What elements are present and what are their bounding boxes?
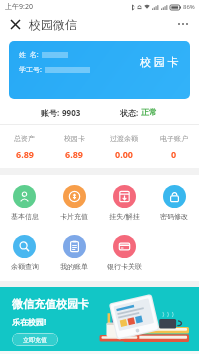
staticText: 微信充值校园卡 (12, 297, 89, 311)
button[interactable]: 基本信息 (0, 183, 49, 223)
staticText: 挂失/解挂 (109, 212, 140, 222)
button[interactable]: 过渡余额 (99, 134, 149, 160)
button[interactable]: 电子账户 (149, 134, 199, 160)
staticText: 校 园 卡 (140, 54, 179, 69)
staticText: 账号: (41, 107, 62, 118)
button[interactable]: 更多 (174, 15, 192, 33)
staticText: 密码修改 (160, 212, 188, 221)
staticText: 基本信息 (11, 212, 39, 221)
staticText: 乐在校园! (12, 316, 47, 327)
staticText: 过渡余额 (110, 134, 138, 143)
button[interactable]: 卡片充值 (49, 183, 99, 223)
staticText: 卡片充值 (60, 212, 88, 221)
button[interactable]: 密码修改 (149, 183, 199, 223)
button[interactable]: 挂失/解挂 (99, 183, 149, 224)
button[interactable]: 银行卡关联 (99, 233, 149, 273)
staticText: 总资产 (14, 134, 35, 143)
staticText: 电子账户 (160, 134, 188, 143)
button[interactable]: 校园卡 (49, 134, 99, 160)
staticText: 0 (171, 148, 177, 160)
button[interactable]: 微信充值校园卡 (0, 287, 199, 351)
staticText: 上午9:20 (5, 2, 33, 12)
staticText: 6.89 (16, 148, 34, 160)
staticText: 银行卡关联 (107, 262, 142, 271)
staticText: 6.89 (65, 148, 83, 160)
staticText: 校园微信 (29, 17, 77, 32)
staticText: 状态: (120, 107, 141, 118)
button[interactable]: 姓 名: (9, 41, 190, 99)
staticText: 正常 (141, 107, 157, 117)
staticText: 9903 (62, 107, 81, 118)
button[interactable]: 余额查询 (0, 233, 49, 273)
staticText: 余额查询 (11, 262, 39, 271)
staticText: 校园卡 (64, 134, 85, 143)
staticText: 学工号: (19, 65, 42, 75)
staticText: 我的账单 (60, 262, 88, 271)
staticText: 立即充值 (23, 336, 47, 344)
button[interactable]: 总资产 (0, 134, 49, 160)
button[interactable]: 关闭 (7, 16, 23, 32)
button[interactable]: 我的账单 (49, 233, 99, 273)
staticText: 0.00 (115, 148, 133, 160)
staticText: 姓 名: (19, 50, 39, 60)
staticText: 86% (183, 3, 195, 11)
